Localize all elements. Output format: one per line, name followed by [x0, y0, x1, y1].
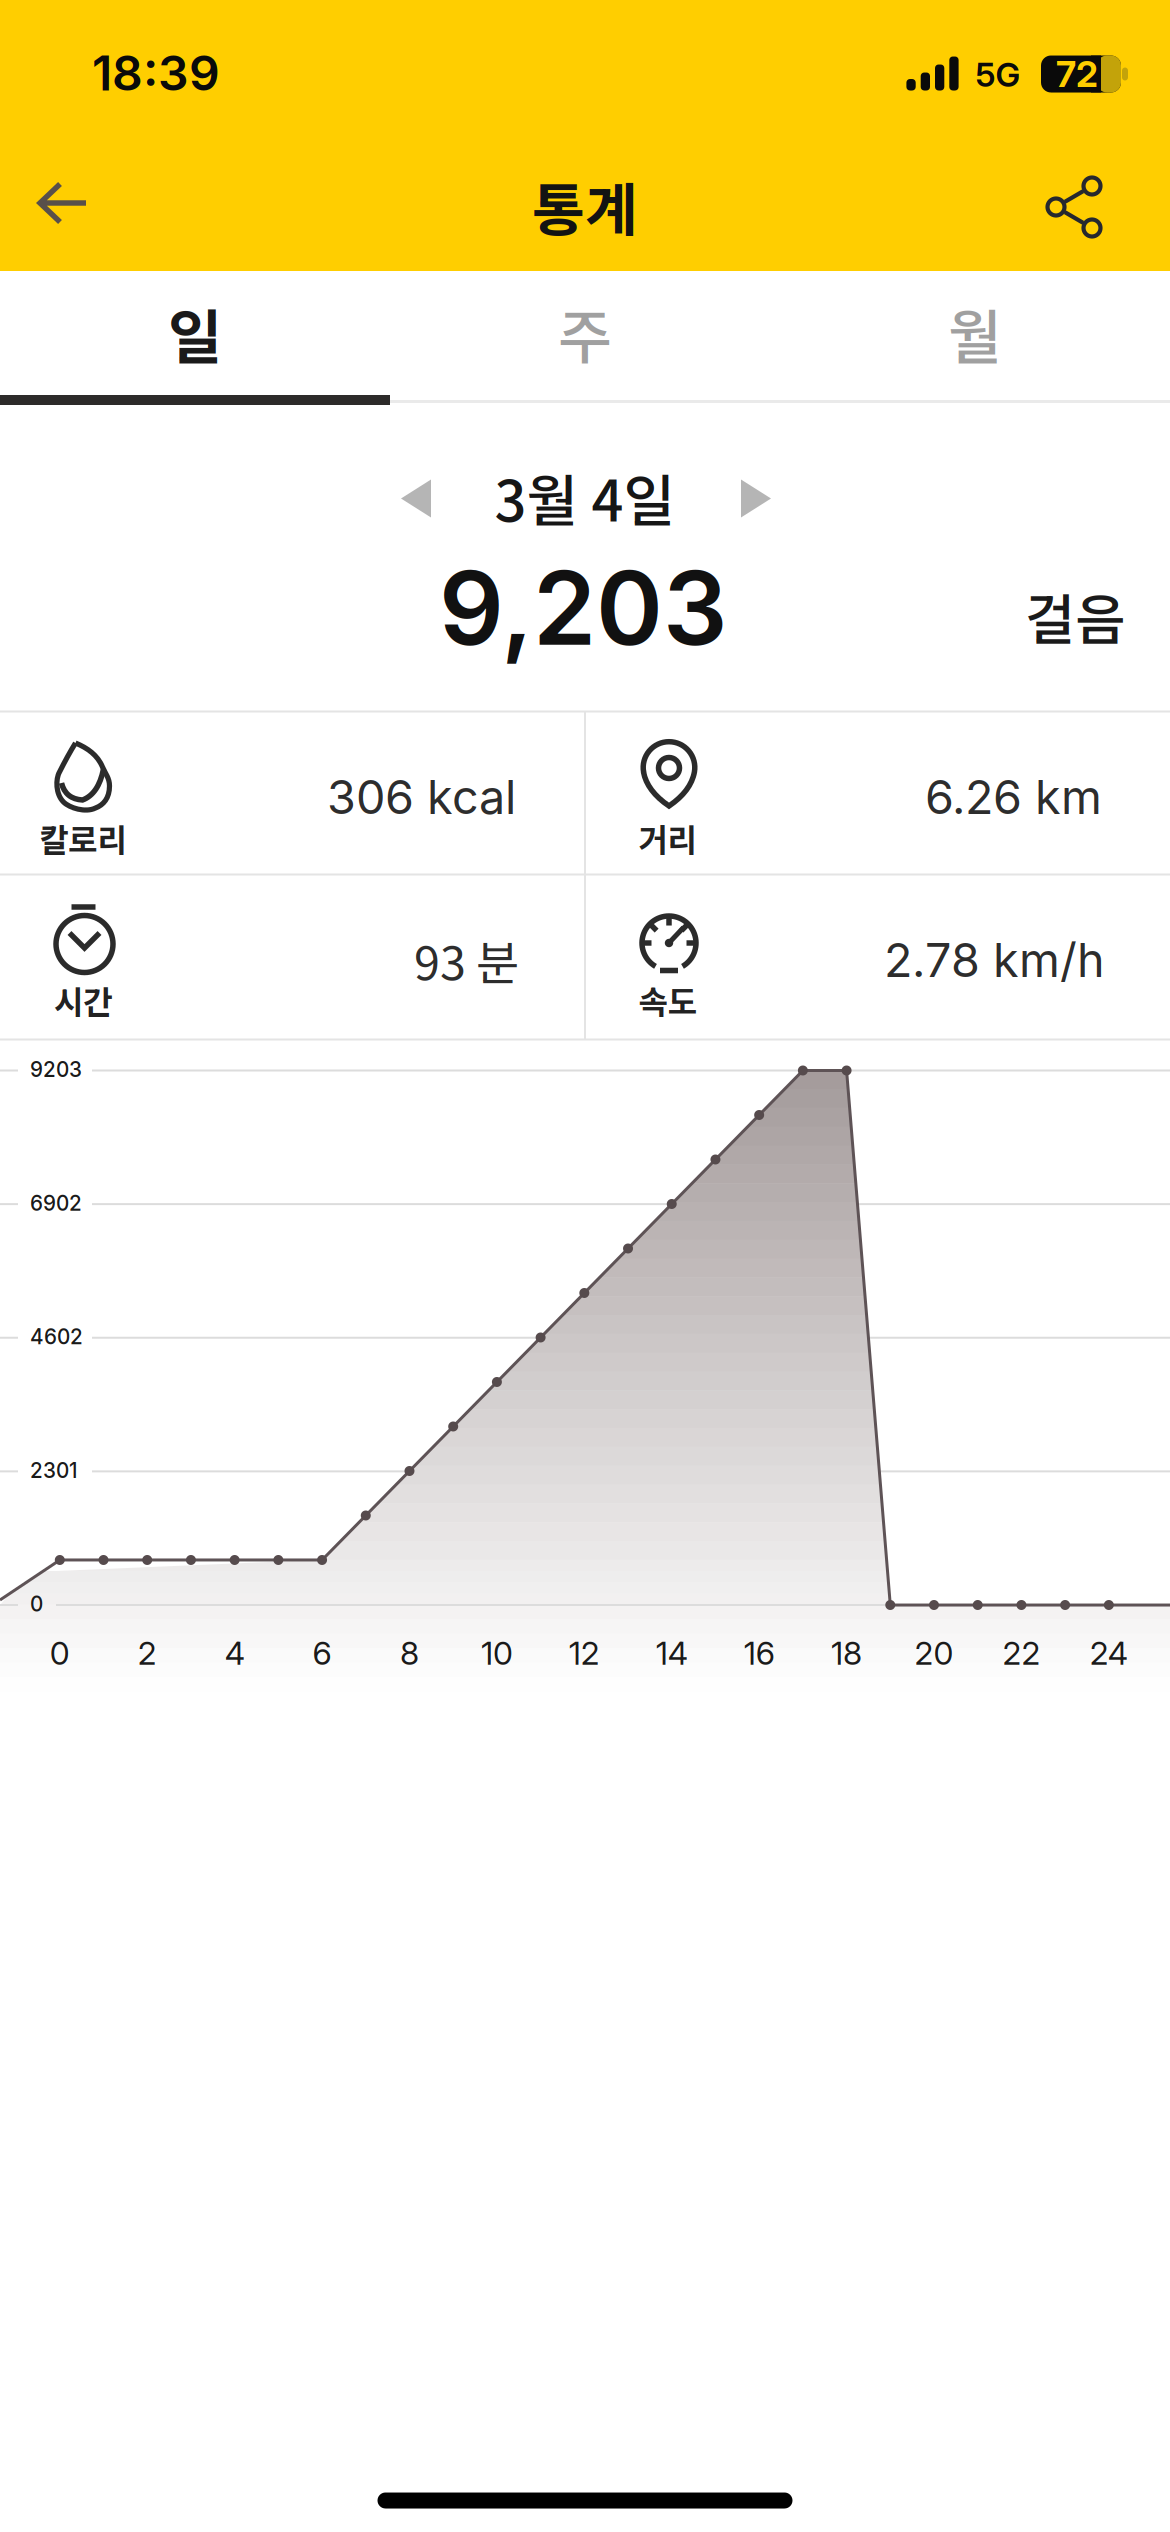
button[interactable]: Back	[36, 181, 88, 225]
staticText: 306 kcal	[327, 769, 516, 825]
button[interactable]: 주	[390, 271, 780, 395]
button[interactable]: Next day	[741, 479, 771, 517]
staticText: 2	[138, 1634, 157, 1672]
staticText: 8	[400, 1634, 419, 1672]
staticText: 93 분	[414, 926, 519, 994]
staticText: 10	[481, 1634, 513, 1672]
staticText: 0	[30, 1591, 43, 1616]
staticText: 12	[569, 1634, 600, 1672]
staticText: 일	[168, 290, 222, 375]
staticText: 속도	[638, 977, 696, 1023]
button[interactable]: Share	[1046, 179, 1102, 235]
staticText: 통계	[532, 164, 638, 247]
staticText: 9203	[30, 1057, 82, 1082]
staticText: 72	[1056, 52, 1098, 96]
staticText: 20	[914, 1634, 953, 1672]
staticText: 6	[313, 1634, 332, 1672]
staticText: 2301	[30, 1458, 77, 1483]
staticText: 14	[656, 1634, 688, 1672]
staticText: 주	[558, 290, 612, 375]
staticText: 6902	[30, 1191, 82, 1216]
staticText: 거리	[638, 815, 696, 861]
staticText: 월	[948, 290, 1002, 375]
staticText: 16	[744, 1634, 775, 1672]
staticText: 시간	[54, 977, 112, 1023]
staticText: 2.78 km/h	[884, 932, 1105, 988]
button[interactable]: 월	[780, 271, 1170, 395]
staticText: 18:39	[92, 44, 220, 102]
staticText: 9,203	[439, 547, 727, 669]
staticText: 걸음	[1025, 576, 1125, 656]
staticText: 6.26 km	[925, 769, 1102, 825]
staticText: 24	[1090, 1634, 1128, 1672]
staticText: 3월 4일	[494, 456, 675, 538]
button[interactable]: Previous day	[401, 479, 431, 517]
staticText: 0	[50, 1634, 70, 1672]
button[interactable]: 일	[0, 271, 390, 395]
staticText: 4	[225, 1634, 245, 1672]
staticText: 18	[831, 1634, 862, 1672]
staticText: 22	[1002, 1634, 1040, 1672]
staticText: 칼로리	[39, 815, 126, 861]
staticText: 4602	[30, 1324, 83, 1349]
staticText: 5G	[975, 54, 1020, 95]
